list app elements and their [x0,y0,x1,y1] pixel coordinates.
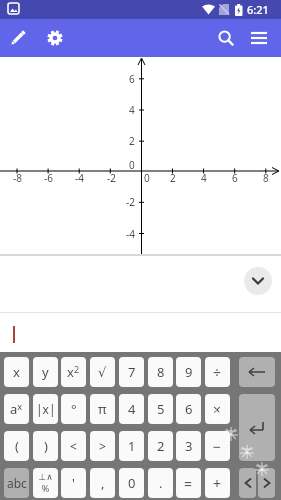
staticText: 5 [157,400,165,418]
staticText: 6:21 [247,2,269,17]
button[interactable]: 3 [176,431,201,461]
staticText: -6 [44,171,53,185]
staticText: < [70,438,77,454]
button[interactable]: ( [4,431,29,461]
button[interactable]: 7 [119,357,144,387]
button[interactable]: × [205,394,230,424]
button[interactable]: 8 [148,357,173,387]
staticText: 7 [128,363,136,381]
button[interactable]: y [33,357,58,387]
button[interactable]: 0 [119,468,144,498]
staticText: . [159,474,163,492]
staticText: -4 [75,171,84,185]
button[interactable]: ' [61,468,86,498]
staticText: ' [72,474,75,492]
staticText: ÷ [213,363,222,382]
button[interactable]: ax [4,394,29,424]
staticText: + [213,474,222,493]
staticText: 2 [129,134,135,148]
button[interactable] [214,26,238,50]
button[interactable]: √ [90,357,115,387]
staticText: ) [44,437,48,455]
button[interactable]: 4 [119,394,144,424]
staticText: 1 [128,437,136,455]
staticText: , [101,474,105,492]
button[interactable]: abc [4,468,29,498]
staticText: π [98,400,107,418]
staticText: √ [98,365,107,380]
staticText: 2 [170,171,176,185]
staticText: |x| [36,401,56,417]
button[interactable]: x2 [61,357,86,387]
staticText: 4 [129,103,135,117]
staticText: ax [10,400,23,418]
button[interactable]: < [61,431,86,461]
button[interactable]: = [176,468,201,498]
staticText: abc [7,475,27,491]
button[interactable]: ⊥∧ % [33,468,58,498]
staticText: 8 [157,363,165,381]
staticText: 2 [157,437,165,455]
staticText: -4 [126,227,135,241]
button[interactable]: > [90,431,115,461]
staticText: 0 [144,171,150,185]
button[interactable] [0,313,281,352]
staticText: − [213,437,222,456]
button[interactable] [239,394,275,461]
staticText: 3 [185,437,193,455]
staticText: x [13,363,20,381]
button[interactable]: ° [61,394,86,424]
button[interactable] [258,468,275,498]
button[interactable]: , [90,468,115,498]
button[interactable]: ) [33,431,58,461]
staticText: 4 [201,171,207,185]
button[interactable]: ÷ [205,357,230,387]
staticText: 6 [185,400,193,418]
staticText: -2 [126,195,135,209]
button[interactable] [239,468,256,498]
staticText: x2 [67,363,80,381]
staticText: -2 [107,171,116,185]
staticText: 6 [232,171,238,185]
button[interactable] [43,26,67,50]
staticText: y [42,363,49,381]
staticText: -8 [13,171,22,185]
button[interactable] [247,26,271,50]
staticText: ⊥∧ % [38,472,53,494]
button[interactable]: + [205,468,230,498]
button[interactable]: − [205,431,230,461]
button[interactable] [239,357,275,387]
staticText: 6 [129,72,135,86]
staticText: 8 [263,171,269,185]
staticText: ° [71,400,77,418]
button[interactable]: 5 [148,394,173,424]
staticText: 0 [128,474,136,492]
button[interactable]: 9 [176,357,201,387]
button[interactable]: 6 [176,394,201,424]
staticText: 4 [128,400,136,418]
button[interactable]: |x| [33,394,58,424]
button[interactable]: π [90,394,115,424]
staticText: 0 [129,158,135,172]
button[interactable]: . [148,468,173,498]
button[interactable]: 1 [119,431,144,461]
button[interactable]: 2 [148,431,173,461]
button[interactable] [6,26,30,50]
staticText: 9 [185,363,193,381]
staticText: = [184,474,193,493]
button[interactable]: x [4,357,29,387]
button[interactable] [244,267,272,295]
staticText: > [99,438,106,454]
staticText: × [213,400,222,419]
staticText: ( [15,437,19,455]
